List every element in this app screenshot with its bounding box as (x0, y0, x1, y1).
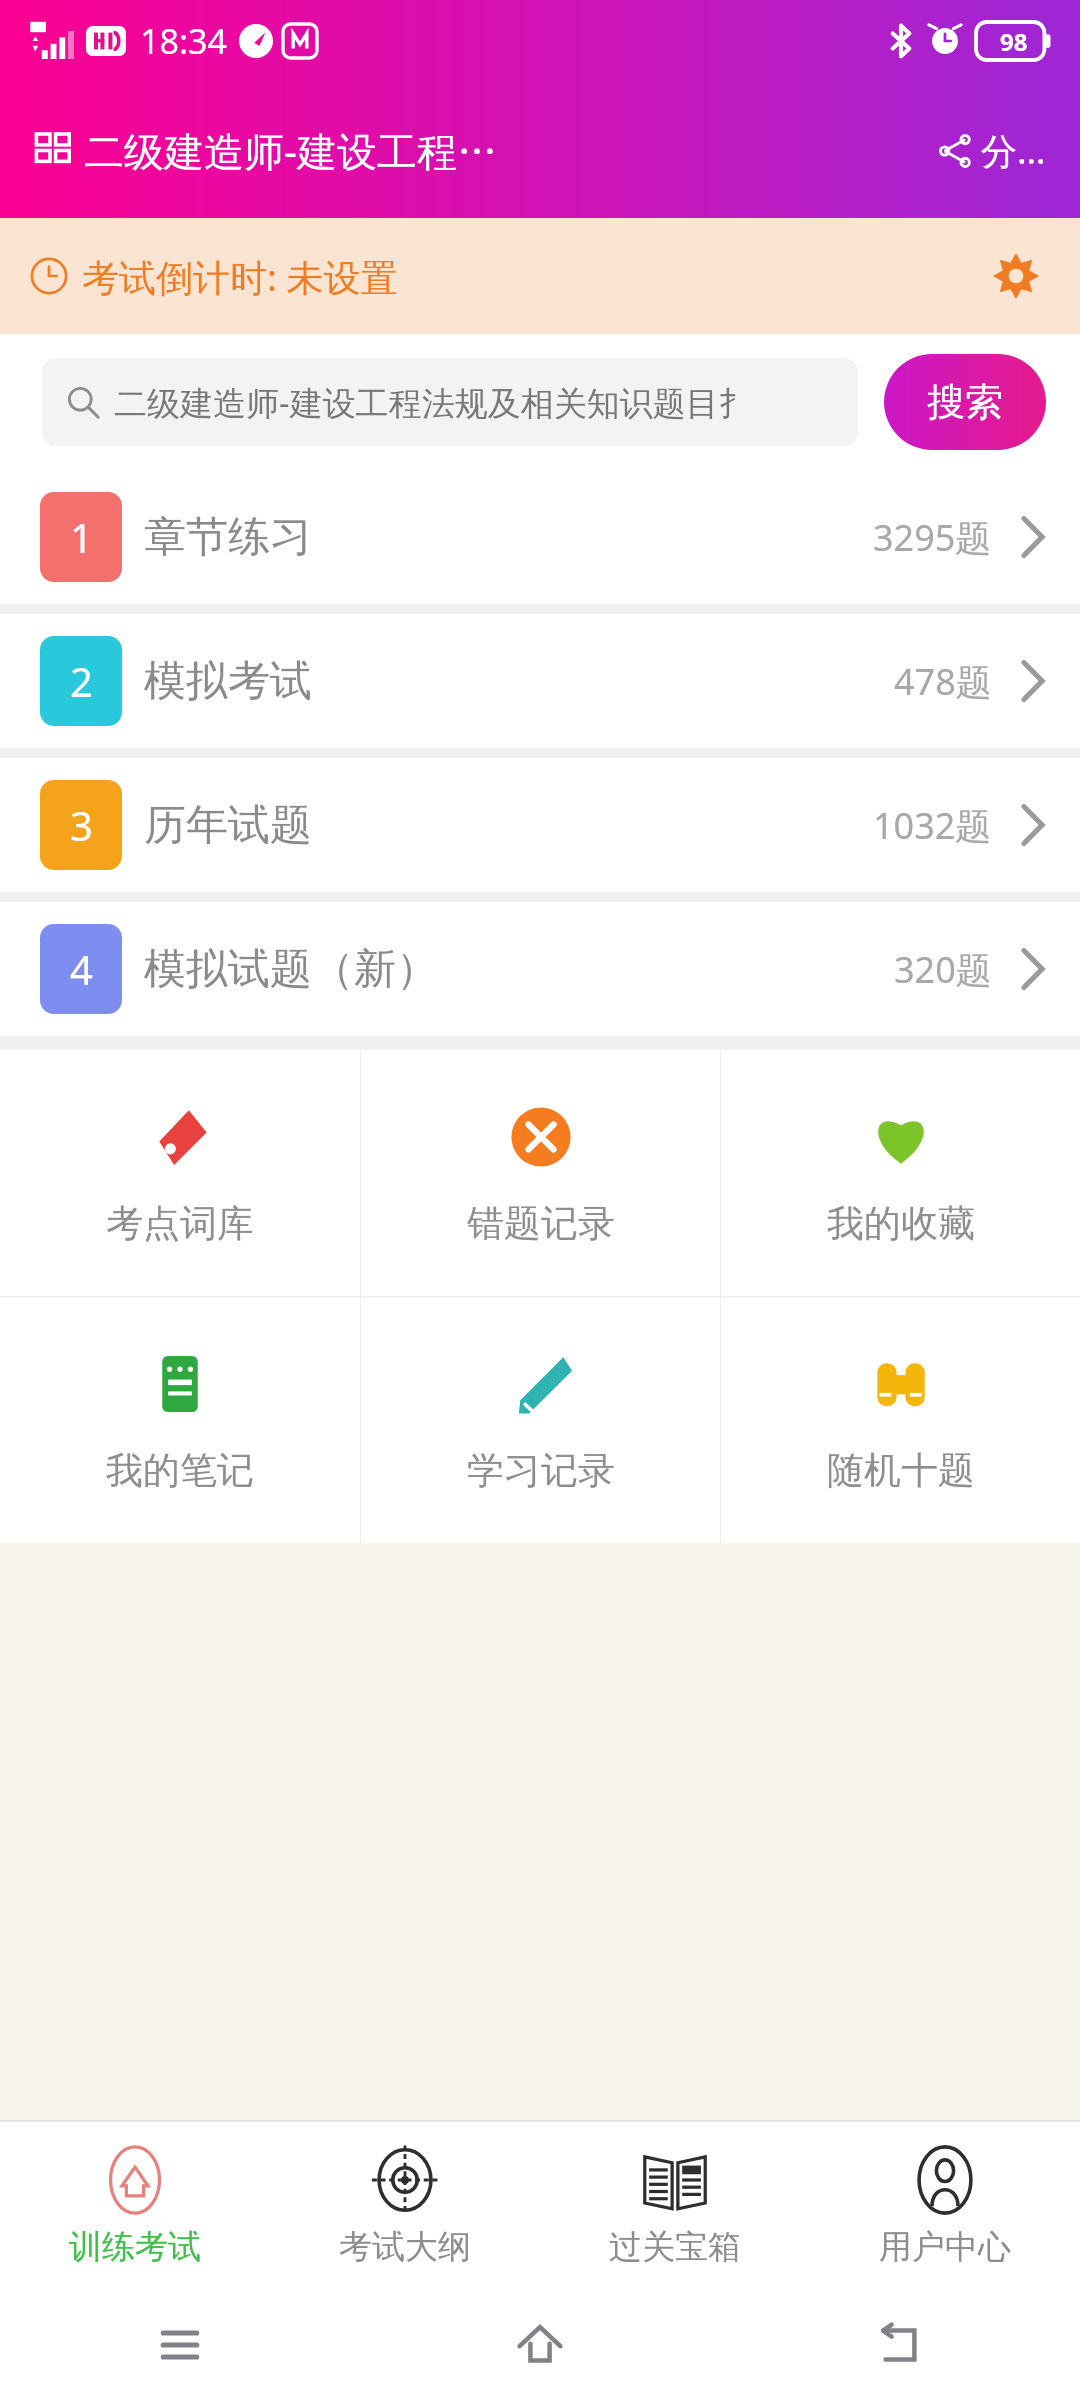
staticText: 考试大纲 (339, 2226, 471, 2268)
button[interactable]: 4 (0, 902, 1080, 1036)
button[interactable]: 分享 (931, 116, 1052, 185)
staticText: 考点词库 (106, 1200, 254, 1247)
button[interactable]: 我的收藏 (721, 1050, 1080, 1296)
staticText: 分… (981, 126, 1046, 175)
staticText: 错题记录 (467, 1200, 615, 1247)
button[interactable]: 错题记录 (361, 1050, 720, 1296)
staticText: 320题 (894, 945, 992, 994)
button[interactable]: 过关宝箱 (540, 2122, 810, 2290)
button[interactable]: 考试大纲 (270, 2122, 540, 2290)
staticText: 3 (70, 798, 93, 852)
button[interactable]: 随机十题 (721, 1297, 1080, 1543)
button[interactable]: 设置 (986, 246, 1046, 306)
button[interactable]: Back (720, 2290, 1080, 2400)
staticText: 2 (70, 654, 93, 708)
button[interactable]: 2 (0, 614, 1080, 748)
button[interactable]: 训练考试 (0, 2122, 270, 2290)
button[interactable]: 学习记录 (361, 1297, 720, 1543)
staticText: 4 (70, 942, 93, 996)
staticText: 用户中心 (879, 2226, 1011, 2268)
button[interactable]: 用户中心 (810, 2122, 1080, 2290)
staticText: 3295题 (873, 513, 992, 562)
staticText: 学习记录 (467, 1447, 615, 1494)
staticText: 我的收藏 (827, 1200, 975, 1247)
button[interactable]: 1 (0, 470, 1080, 604)
staticText: 18:34 (140, 18, 227, 64)
button[interactable]: Recents (0, 2290, 360, 2400)
staticText: 二级建造师-建设工程法规及相关知识题目扌 (114, 380, 752, 425)
staticText: 考试倒计时: 未设置 (82, 251, 398, 302)
button[interactable]: 二级建造师-建设工程法规及相关知识题目扌 (42, 358, 858, 446)
staticText: 模拟考试 (144, 655, 312, 708)
button[interactable]: 3 (0, 758, 1080, 892)
staticText: 训练考试 (69, 2226, 201, 2268)
staticText: 我的笔记 (106, 1447, 254, 1494)
staticText: 随机十题 (827, 1447, 975, 1494)
staticText: 478题 (894, 657, 992, 706)
staticText: 历年试题 (144, 799, 312, 852)
button[interactable]: 考点词库 (0, 1050, 360, 1296)
button[interactable]: Home (360, 2290, 720, 2400)
staticText: 1032题 (873, 801, 992, 850)
staticText: 1 (70, 510, 93, 564)
staticText: 过关宝箱 (609, 2226, 741, 2268)
staticText: 搜索 (927, 378, 1003, 426)
staticText: 二级建造师-建设工程法规及相关… (84, 123, 507, 178)
staticText: 98 (1000, 25, 1028, 58)
button[interactable]: 考试倒计时: 未设置 (0, 218, 1080, 334)
staticText: 章节练习 (144, 511, 312, 564)
button[interactable]: 我的笔记 (0, 1297, 360, 1543)
button[interactable]: 搜索 (884, 354, 1046, 450)
staticText: 模拟试题（新） (144, 943, 438, 996)
